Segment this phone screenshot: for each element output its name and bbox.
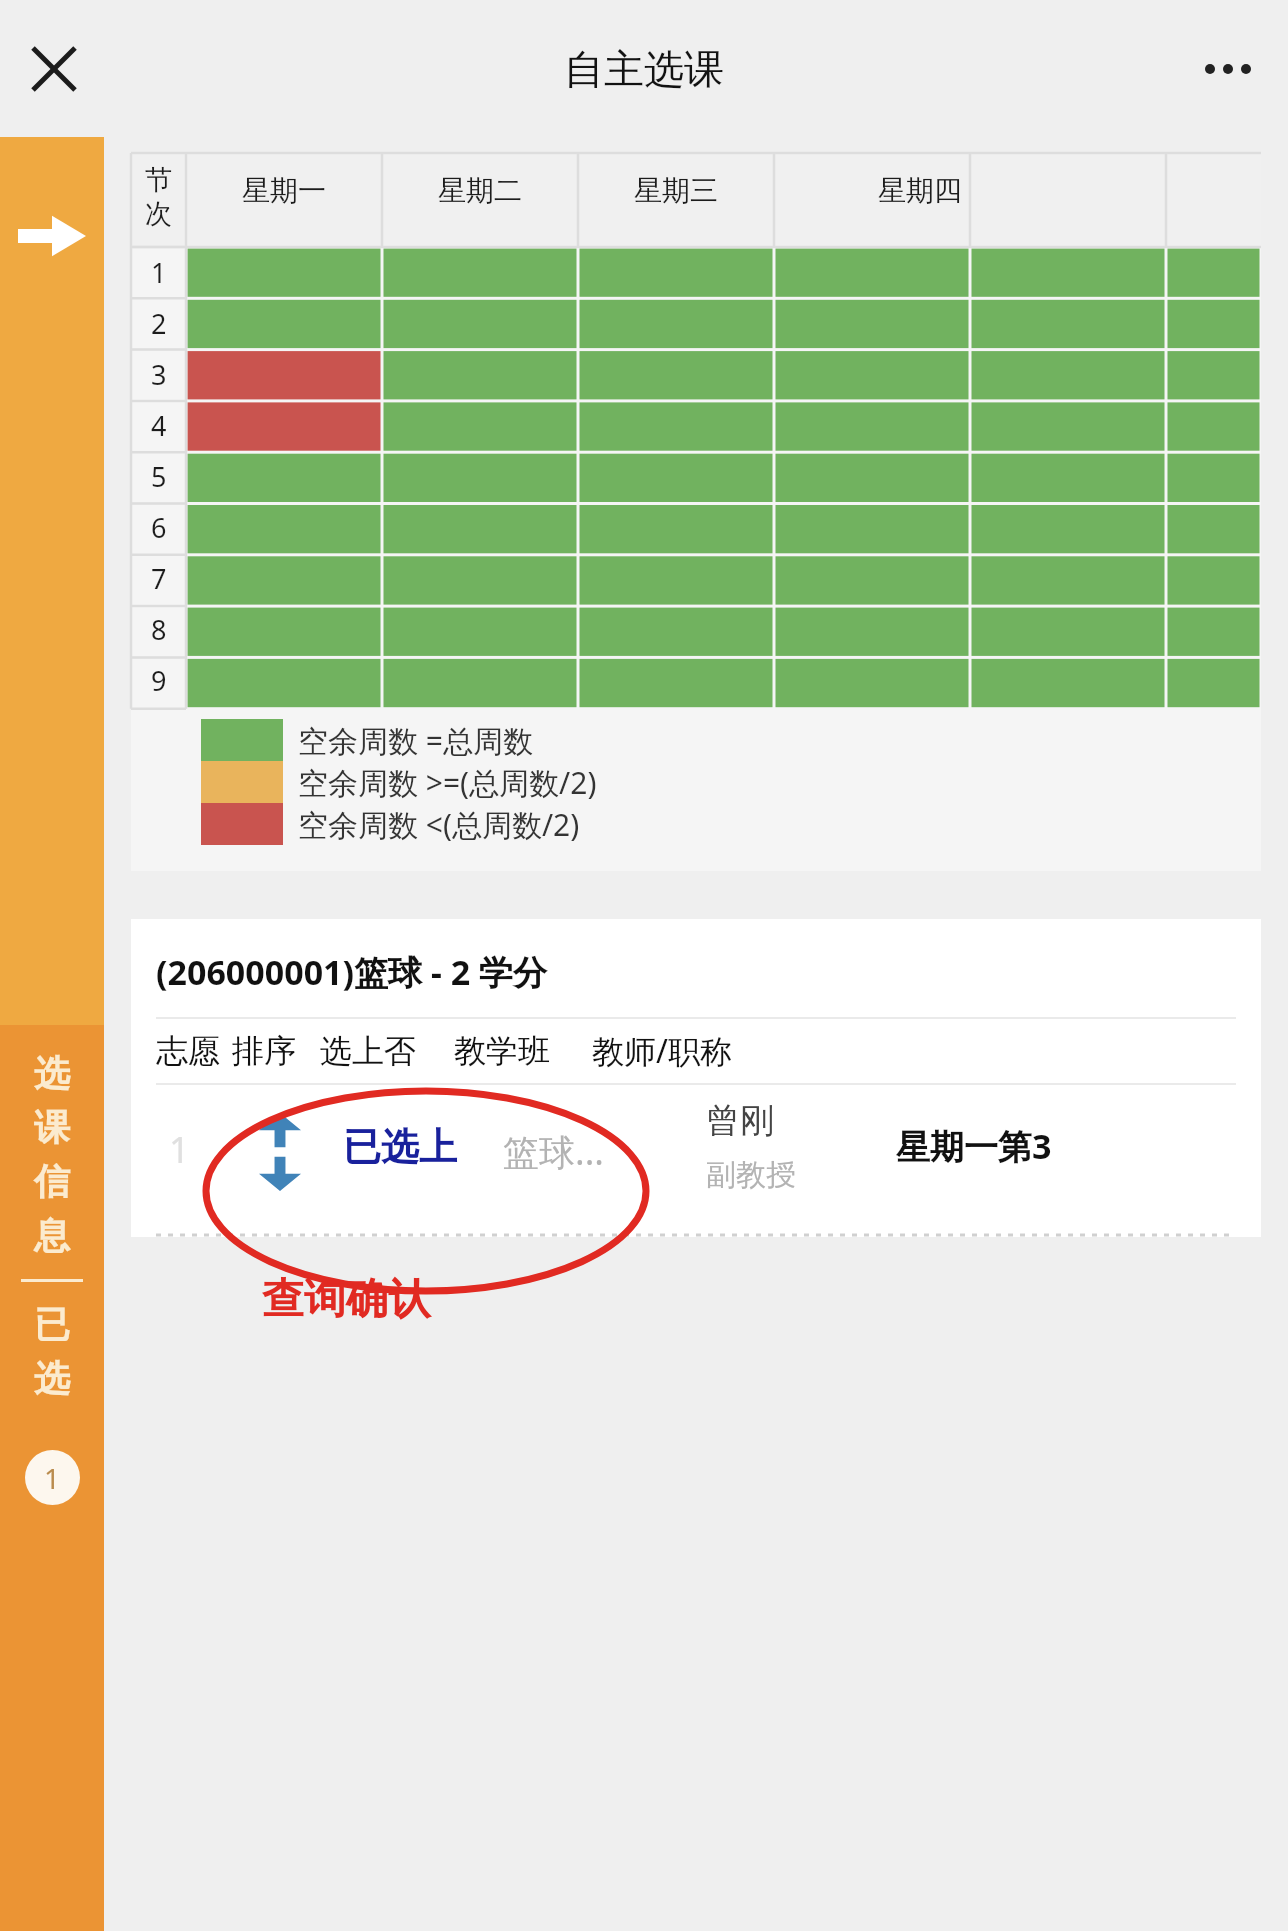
staticText: (206000001)篮球 - 2 学分 (156, 949, 547, 995)
staticText: 选上否 (320, 1031, 416, 1071)
staticText: 课 (34, 1105, 70, 1150)
staticText: 4 (151, 407, 167, 444)
staticText: 息 (34, 1213, 70, 1258)
staticText: 5 (151, 458, 167, 495)
staticText: 节 (145, 163, 192, 197)
button[interactable]: Course selection info, 1 selected (0, 1025, 104, 1931)
staticText: 教学班 (454, 1031, 550, 1071)
staticText: 选 (34, 1356, 70, 1401)
staticText: 7 (151, 560, 167, 597)
staticText: 9 (151, 662, 167, 699)
staticText: 1 (151, 254, 167, 291)
button[interactable]: More options (1194, 35, 1262, 103)
staticText: 星期四 (878, 173, 962, 208)
staticText: 1 (44, 1459, 61, 1497)
staticText: 星期一 (242, 173, 326, 208)
staticText: 篮球... (503, 1127, 604, 1176)
staticText: 次 (145, 197, 192, 231)
staticText: 曾刚 (706, 1099, 774, 1142)
staticText: 星期二 (438, 173, 522, 208)
staticText: 排序 (232, 1031, 296, 1071)
staticText: 查询确认 (262, 1273, 430, 1326)
staticText: 选 (34, 1051, 70, 1096)
staticText: 星期三 (634, 173, 718, 208)
staticText: 3 (151, 356, 167, 393)
staticText: 1 (169, 1125, 190, 1174)
staticText: 星期一第3 (896, 1123, 1052, 1169)
staticText: 空余周数 <(总周数/2) (298, 804, 580, 845)
staticText: 已选上 (343, 1123, 457, 1171)
staticText: 副教授 (706, 1156, 796, 1194)
staticText: 2 (151, 305, 167, 342)
staticText: 空余周数 =总周数 (298, 720, 533, 761)
button[interactable]: Expand side panel (0, 137, 104, 1025)
staticText: 8 (151, 611, 167, 648)
staticText: 空余周数 >=(总周数/2) (298, 762, 597, 803)
staticText: 教师/职称 (592, 1029, 732, 1073)
staticText: 志愿 (156, 1031, 220, 1071)
button[interactable]: Close (20, 35, 88, 103)
staticText: 已 (34, 1302, 70, 1347)
staticText: 信 (34, 1159, 70, 1204)
staticText: 自主选课 (564, 44, 724, 94)
staticText: 6 (151, 509, 167, 546)
